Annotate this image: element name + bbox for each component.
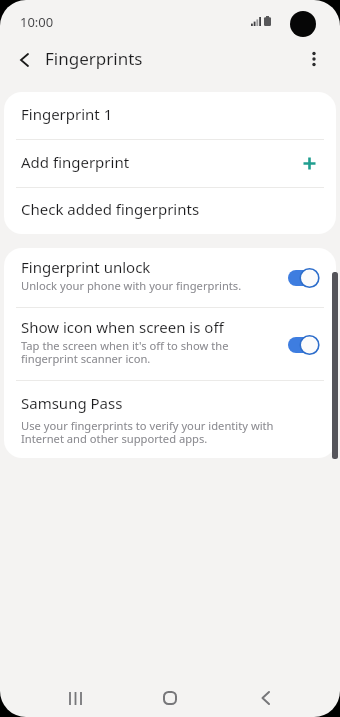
button[interactable]: Fingerprint 1: [4, 92, 336, 139]
staticText: Unlock your phone with your fingerprints…: [21, 278, 242, 293]
button[interactable]: [56, 684, 94, 712]
button[interactable]: Show icon when screen is off: [4, 308, 336, 380]
staticText: Use your fingerprints to verify your ide…: [21, 418, 274, 447]
button[interactable]: [288, 268, 320, 288]
button[interactable]: [248, 684, 282, 712]
button[interactable]: [300, 45, 328, 73]
button[interactable]: Add fingerprint: [4, 140, 336, 187]
button[interactable]: Check added fingerprints: [4, 188, 336, 234]
staticText: Show icon when screen is off: [21, 317, 224, 337]
staticText: Fingerprints: [45, 47, 143, 70]
staticText: 10:00: [20, 13, 54, 31]
button[interactable]: Fingerprint unlock: [4, 248, 336, 307]
button[interactable]: [288, 335, 320, 355]
staticText: Tap the screen when it's off to show the…: [21, 338, 229, 367]
button[interactable]: [8, 46, 40, 74]
staticText: Fingerprint 1: [21, 104, 113, 124]
button[interactable]: [152, 684, 188, 712]
staticText: Samsung Pass: [21, 393, 123, 413]
button[interactable]: Samsung Pass: [4, 381, 336, 458]
staticText: Fingerprint unlock: [21, 257, 151, 277]
staticText: Check added fingerprints: [21, 199, 200, 219]
staticText: Add fingerprint: [21, 152, 130, 172]
